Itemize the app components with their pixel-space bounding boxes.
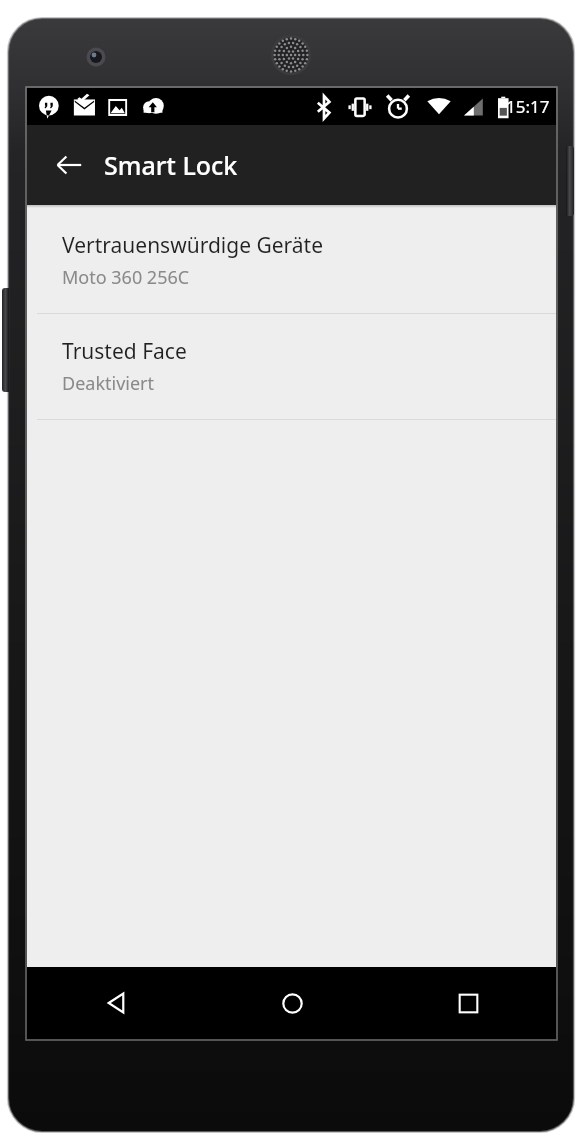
staticText: Smart Lock [104,148,238,182]
staticText: Vertrauenswürdige Geräte [62,231,324,260]
staticText: Trusted Face [62,337,187,366]
button[interactable]: Vertrauenswürdige Geräte [27,208,556,313]
button[interactable]: Home [204,967,380,1039]
button[interactable]: Back [47,143,91,187]
staticText: 15:17 [506,95,550,118]
button[interactable]: Trusted Face [27,314,556,419]
staticText: Moto 360 256C [62,265,190,290]
staticText: Deaktiviert [62,371,155,396]
button[interactable]: Recent apps [380,967,556,1039]
button[interactable]: Back [27,967,204,1039]
